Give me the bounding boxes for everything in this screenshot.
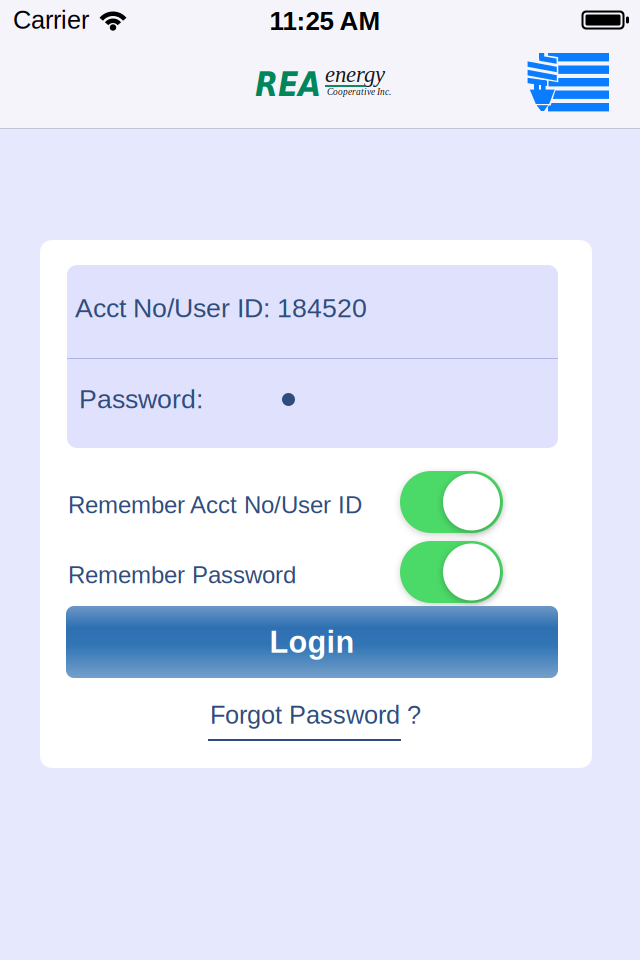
button[interactable]: Remember Password [65,541,503,603]
staticText: 11:25 AM [269,6,380,35]
staticText: energy [325,62,385,87]
staticText: Cooperative Inc. [327,87,391,97]
button[interactable]: Forgot Password ? [208,702,424,748]
button[interactable]: REA Energy [527,53,609,111]
staticText: Acct No/User ID: 184520 [75,293,367,323]
button[interactable]: Login [66,606,558,678]
staticText: Remember Acct No/User ID [68,492,362,518]
staticText: Password: [79,384,203,414]
staticText: Login [269,625,354,659]
staticText: REA [255,65,321,104]
button[interactable]: Remember Acct No/User ID [65,471,503,533]
staticText: Forgot Password ? [210,701,421,729]
staticText: Remember Password [68,562,296,588]
staticText: Carrier [13,6,89,34]
